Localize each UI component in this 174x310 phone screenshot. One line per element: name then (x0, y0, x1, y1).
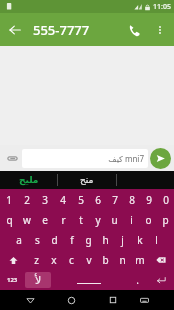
staticText: 8 (129, 193, 135, 207)
staticText: كيف mni7 (108, 153, 144, 164)
staticText: مليح (19, 175, 39, 185)
button[interactable]: Call (120, 16, 148, 44)
staticText: . (136, 273, 139, 287)
button[interactable]: j (114, 230, 131, 250)
button[interactable]: y (89, 210, 106, 230)
button[interactable]: x (45, 250, 63, 270)
button[interactable]: Shift (0, 250, 27, 270)
button[interactable]: . (127, 270, 148, 290)
button[interactable]: 0 (157, 189, 174, 210)
staticText: 3 (42, 193, 48, 207)
button[interactable]: 3 (36, 189, 54, 210)
button[interactable]: 5 (72, 189, 89, 210)
staticText: l (155, 233, 158, 247)
button[interactable]: مليح (0, 171, 57, 189)
staticText: a (16, 233, 22, 247)
button[interactable]: Backspace (148, 250, 174, 270)
staticText: u (111, 213, 118, 227)
staticText: i (130, 213, 133, 227)
staticText: 1 (6, 193, 12, 207)
button[interactable]: Space (51, 270, 127, 290)
button[interactable]: h (97, 230, 114, 250)
staticText: s (35, 233, 40, 247)
staticText: منح (80, 175, 94, 185)
staticText: y (95, 213, 101, 227)
button[interactable]: w (18, 210, 36, 230)
button[interactable]: Recent apps (99, 290, 126, 310)
staticText: j (121, 233, 124, 247)
staticText: 9 (146, 193, 152, 207)
button[interactable]: u (106, 210, 123, 230)
button[interactable]: 4 (54, 189, 72, 210)
button[interactable]: o (140, 210, 157, 230)
staticText: r (61, 213, 66, 227)
button[interactable]: d (46, 230, 63, 250)
staticText: v (86, 253, 92, 267)
button[interactable]: 7 (106, 189, 123, 210)
button[interactable]: 8 (123, 189, 140, 210)
staticText: k (137, 233, 143, 247)
button[interactable]: Back (0, 15, 30, 45)
staticText: p (162, 213, 169, 227)
button[interactable]: منح (58, 171, 116, 189)
staticText: z (34, 253, 39, 267)
staticText: 555-7777 (33, 21, 90, 39)
staticText: w (23, 213, 31, 227)
button[interactable]: r (54, 210, 72, 230)
staticText: c (69, 253, 74, 267)
staticText: q (6, 213, 13, 227)
button[interactable]: Attach (3, 149, 22, 168)
staticText: 5 (78, 193, 84, 207)
button[interactable]: 1 (0, 189, 18, 210)
button[interactable]: g (80, 230, 97, 250)
staticText: 7 (112, 193, 118, 207)
button[interactable]: e (36, 210, 54, 230)
staticText: b (102, 253, 109, 267)
button[interactable]: Hide keyboard (131, 290, 158, 310)
button[interactable]: 6 (89, 189, 106, 210)
button[interactable]: n (114, 250, 131, 270)
staticText: 4 (60, 193, 66, 207)
button[interactable]: 2 (18, 189, 36, 210)
staticText: n (119, 253, 126, 267)
button[interactable]: Send (150, 148, 171, 169)
button[interactable]: f (63, 230, 80, 250)
button[interactable]: c (63, 250, 80, 270)
button[interactable]: Back (17, 290, 44, 310)
staticText: t (79, 213, 83, 227)
button[interactable]: i (123, 210, 140, 230)
staticText: 123 (7, 276, 18, 284)
button[interactable]: a (10, 230, 28, 250)
button[interactable]: s (28, 230, 46, 250)
button[interactable]: l (148, 230, 165, 250)
staticText: d (51, 233, 58, 247)
staticText: 11:05 (153, 2, 171, 12)
button[interactable]: Numbers and symbols (0, 270, 25, 290)
staticText: 6 (95, 193, 101, 207)
button[interactable]: k (131, 230, 148, 250)
staticText: e (42, 213, 48, 227)
staticText: o (145, 213, 152, 227)
button[interactable]: b (97, 250, 114, 270)
staticText: 2 (24, 193, 30, 207)
button[interactable]: z (27, 250, 45, 270)
staticText: 0 (163, 193, 169, 207)
button[interactable]: Switch language (25, 272, 51, 288)
button[interactable]: m (131, 250, 148, 270)
button[interactable]: More options (148, 18, 172, 42)
button[interactable]: v (80, 250, 97, 270)
staticText: g (85, 233, 92, 247)
button[interactable]: Home (58, 290, 85, 310)
button[interactable]: 9 (140, 189, 157, 210)
staticText: m (135, 253, 145, 267)
button[interactable]: t (72, 210, 89, 230)
button[interactable]: Enter (148, 270, 174, 290)
staticText: f (70, 233, 74, 247)
staticText: x (51, 253, 57, 267)
button[interactable]: q (0, 210, 18, 230)
button[interactable]: كيف mni7 (22, 149, 148, 168)
staticText: لأ (35, 274, 42, 287)
button[interactable]: p (157, 210, 174, 230)
staticText: h (102, 233, 109, 247)
